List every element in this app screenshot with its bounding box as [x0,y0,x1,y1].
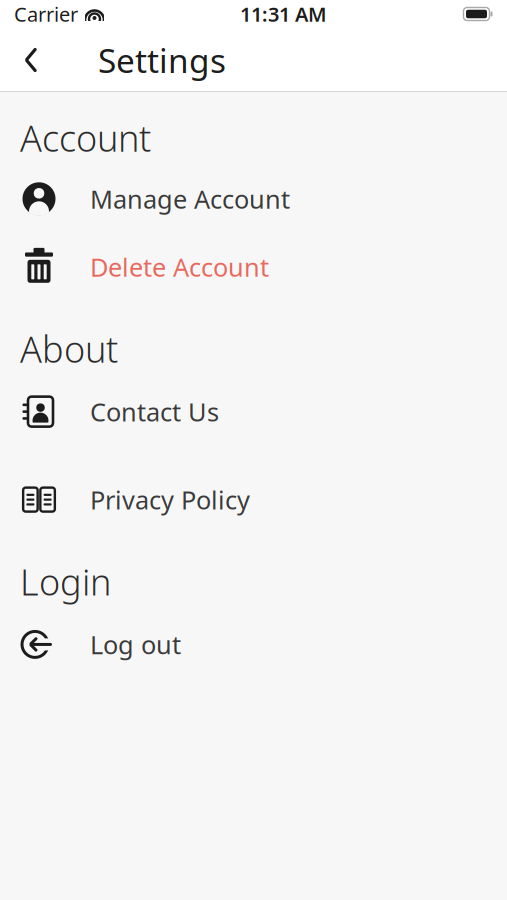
staticText: About [20,325,118,373]
staticText: Delete Account [90,250,269,284]
button[interactable]: Back [8,37,54,83]
staticText: Login [20,558,111,605]
staticText: Manage Account [90,182,290,216]
staticText: 11:31 AM [240,1,327,27]
staticText: Account [20,114,151,162]
button[interactable]: Delete Account [0,237,507,297]
staticText: Contact Us [90,395,219,428]
button[interactable]: Manage Account [0,169,507,229]
button[interactable]: Log out [0,614,507,674]
staticText: Privacy Policy [90,483,250,516]
staticText: Carrier [14,1,78,27]
button[interactable]: Privacy Policy [0,470,507,530]
staticText: Log out [90,628,181,661]
staticText: Settings [98,38,226,82]
button[interactable]: Contact Us [0,382,507,442]
